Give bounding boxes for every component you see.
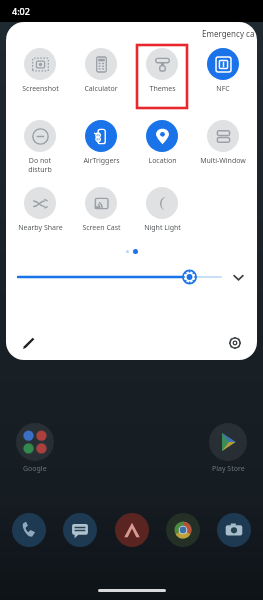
staticText: Location: [148, 156, 177, 166]
button[interactable]: Expand: [227, 266, 249, 288]
button[interactable]: Settings: [223, 331, 247, 355]
button[interactable]: Edit: [16, 331, 40, 355]
button[interactable]: Screen Cast: [75, 185, 127, 235]
button[interactable]: Night Light: [136, 185, 188, 235]
button[interactable]: Emergency ca: [202, 28, 255, 39]
staticText: Play Store: [212, 464, 245, 474]
button[interactable]: App: [63, 513, 97, 547]
staticText: Themes: [149, 84, 176, 94]
button[interactable]: Brightness: [18, 267, 221, 287]
staticText: 4:02: [12, 5, 30, 17]
button[interactable]: App: [217, 513, 251, 547]
button[interactable]: Themes: [136, 46, 188, 96]
staticText: Screenshot: [22, 84, 59, 94]
button[interactable]: Screenshot: [14, 46, 66, 96]
button[interactable]: Location: [136, 118, 188, 168]
staticText: NFC: [216, 84, 230, 94]
button[interactable]: Do not disturb: [14, 118, 66, 176]
staticText: Calculator: [84, 84, 118, 94]
button[interactable]: App: [166, 513, 200, 547]
button[interactable]: App: [115, 513, 149, 547]
staticText: Do not disturb: [28, 156, 52, 174]
button[interactable]: AirTriggers: [75, 118, 127, 168]
button[interactable]: Calculator: [75, 46, 127, 96]
button[interactable]: Nearby Share: [14, 185, 66, 235]
button[interactable]: App: [12, 513, 46, 547]
staticText: Night Light: [144, 223, 181, 233]
staticText: Nearby Share: [18, 223, 63, 233]
button[interactable]: NFC: [197, 46, 249, 96]
staticText: Screen Cast: [82, 223, 121, 233]
button[interactable]: Multi-Window: [197, 118, 249, 168]
staticText: Multi-Window: [200, 156, 246, 166]
staticText: Google: [23, 464, 47, 474]
staticText: AirTriggers: [83, 156, 120, 166]
